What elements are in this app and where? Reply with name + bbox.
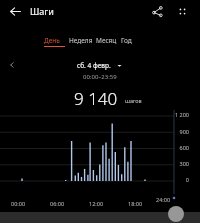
staticText: 1 200 [166,111,189,118]
staticText: День [44,36,60,45]
staticText: 24:00 [156,196,171,203]
button[interactable]: Share [147,1,167,21]
staticText: шагов [125,97,142,104]
button[interactable]: сб. 4 февр. [77,60,124,70]
staticText: Неделя [69,36,93,45]
button[interactable]: Неделя [69,34,93,46]
staticText: Месяц [96,36,117,45]
staticText: Год [121,36,132,45]
staticText: 0 [166,176,189,183]
staticText: 300 [166,160,189,167]
staticText: 600 [166,144,189,151]
staticText: 12:00 [89,200,104,207]
staticText: 00:00–23:59 [83,73,117,81]
staticText: 00:00 [11,200,26,207]
button[interactable]: Apps [172,1,192,21]
button[interactable]: Previous day [4,57,20,73]
button[interactable]: День [44,34,60,46]
button[interactable]: Месяц [96,34,117,46]
button[interactable]: Back [5,1,26,22]
staticText: 9 140 [74,87,118,110]
staticText: 18:00 [128,200,143,207]
staticText: 06:00 [50,200,65,207]
staticText: 900 [166,128,189,135]
staticText: сб. 4 февр. [77,61,111,70]
button[interactable]: Год [121,34,132,46]
staticText: Шаги [30,5,54,17]
